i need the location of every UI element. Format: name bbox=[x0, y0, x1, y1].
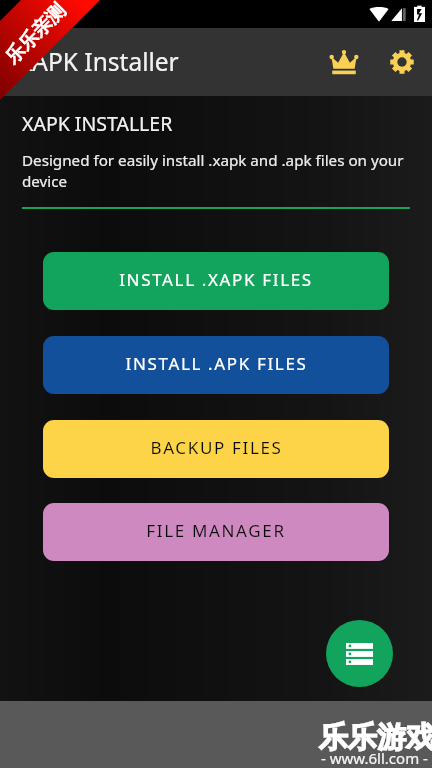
staticText: INSTALL .APK FILES bbox=[125, 352, 308, 375]
button[interactable]: Menu bbox=[326, 620, 393, 687]
button[interactable]: FILE MANAGER bbox=[43, 503, 389, 561]
button[interactable]: BACKUP FILES bbox=[43, 420, 389, 478]
other: Signal bbox=[391, 7, 406, 22]
button[interactable]: INSTALL .APK FILES bbox=[43, 336, 389, 394]
staticText: 乐乐亲测 bbox=[0, 0, 71, 69]
staticText: BACKUP FILES bbox=[150, 436, 283, 459]
staticText: FILE MANAGER bbox=[146, 519, 286, 542]
staticText: XAPK Installer bbox=[18, 45, 179, 78]
other: Wi-Fi bbox=[369, 6, 389, 22]
staticText: - www.6ll.com - bbox=[321, 748, 428, 768]
staticText: INSTALL .XAPK FILES bbox=[119, 268, 313, 291]
button[interactable]: Settings bbox=[378, 38, 426, 86]
button[interactable]: Premium bbox=[320, 38, 368, 86]
button[interactable]: INSTALL .XAPK FILES bbox=[43, 252, 389, 310]
staticText: XAPK INSTALLER bbox=[22, 110, 173, 137]
staticText: 乐乐游戏 bbox=[319, 719, 432, 756]
staticText: Designed for easily install .xapk and .a… bbox=[22, 150, 410, 192]
other: Battery charging bbox=[414, 4, 425, 22]
